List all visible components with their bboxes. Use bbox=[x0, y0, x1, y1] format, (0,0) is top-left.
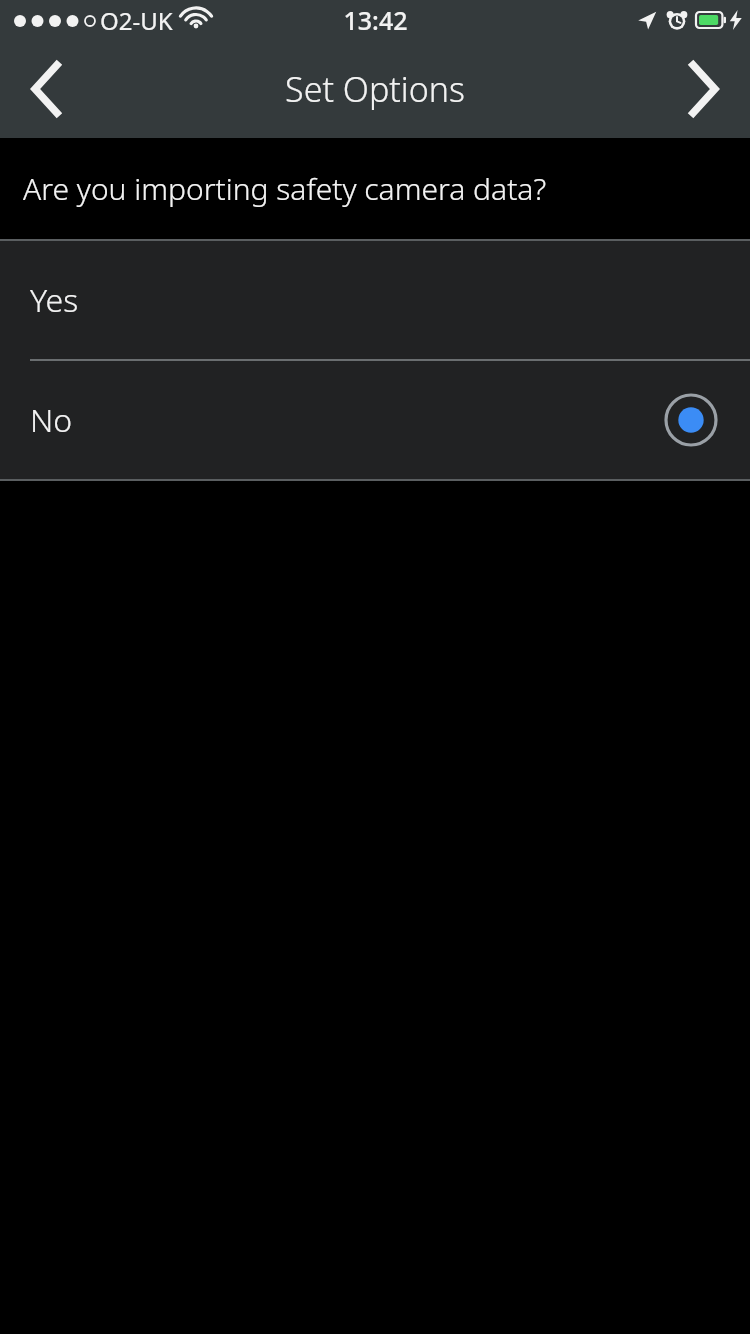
staticText: Are you importing safety camera data? bbox=[23, 168, 547, 209]
button[interactable]: No bbox=[0, 361, 750, 479]
staticText: 13:42 bbox=[343, 3, 408, 37]
staticText: No bbox=[30, 398, 73, 442]
button[interactable]: Back bbox=[0, 40, 92, 138]
staticText: O2-UK bbox=[100, 4, 173, 37]
button[interactable]: Next bbox=[658, 40, 750, 138]
staticText: Yes bbox=[30, 278, 79, 322]
staticText: Set Options bbox=[285, 66, 465, 112]
button[interactable]: Yes bbox=[0, 241, 750, 359]
